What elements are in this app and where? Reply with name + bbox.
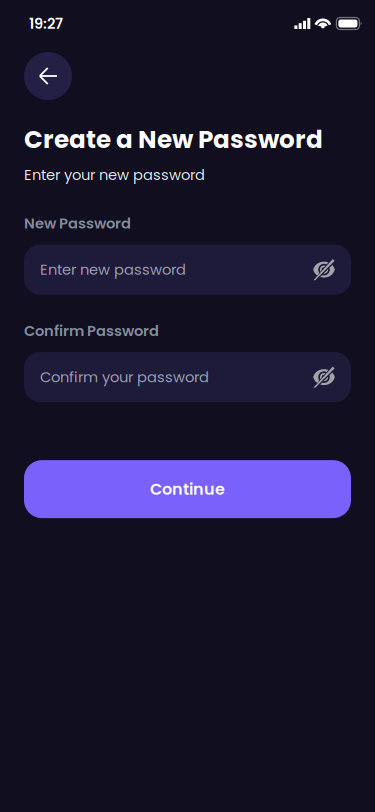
button[interactable]: Back — [24, 52, 72, 100]
staticText: Enter new password — [40, 259, 186, 280]
staticText: Continue — [150, 478, 225, 500]
staticText: Confirm your password — [40, 367, 209, 387]
staticText: Confirm Password — [24, 321, 159, 341]
button[interactable]: Continue — [24, 460, 351, 518]
staticText: New Password — [24, 213, 131, 234]
staticText: Create a New Password — [24, 122, 323, 156]
button[interactable]: Show confirm password — [308, 361, 340, 393]
staticText: Enter your new password — [24, 164, 205, 185]
button[interactable]: Show new password — [308, 254, 340, 286]
staticText: 19:27 — [29, 13, 63, 34]
